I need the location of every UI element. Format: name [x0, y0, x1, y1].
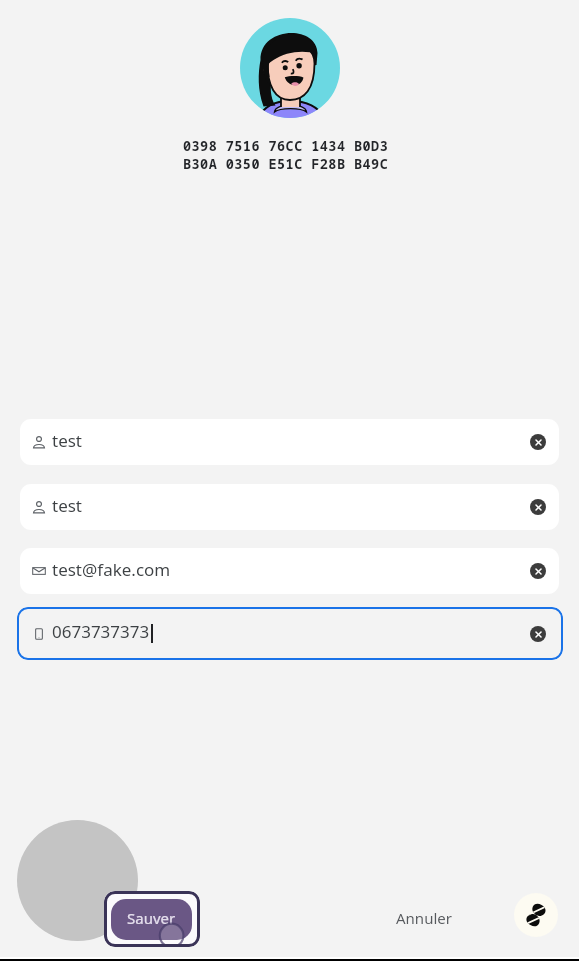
staticText: Annuler	[396, 908, 452, 928]
button[interactable]: Sauver	[104, 891, 200, 947]
button[interactable]: Annuler	[369, 898, 479, 938]
button[interactable]: test	[20, 419, 559, 465]
button[interactable]: Clear text	[530, 499, 546, 515]
button[interactable]: 0673737373	[17, 607, 563, 660]
button[interactable]: test@fake.com	[20, 548, 559, 594]
staticText: 0398 7516 76CC 1434 B0D3	[183, 137, 389, 155]
staticText: test@fake.com	[52, 558, 171, 581]
button[interactable]: Clear text	[530, 563, 546, 579]
button[interactable]: test	[20, 484, 559, 530]
staticText: Sauver	[127, 908, 176, 928]
button[interactable]: Clear text	[530, 626, 546, 642]
staticText: 0673737373	[52, 620, 150, 643]
button[interactable]: Clear text	[530, 434, 546, 450]
staticText: test	[52, 429, 83, 452]
staticText: B30A 0350 E51C F28B B49C	[183, 155, 389, 173]
button[interactable]: Profile picture	[240, 18, 340, 118]
button[interactable]: Assistant	[514, 893, 558, 937]
staticText: test	[52, 494, 83, 517]
